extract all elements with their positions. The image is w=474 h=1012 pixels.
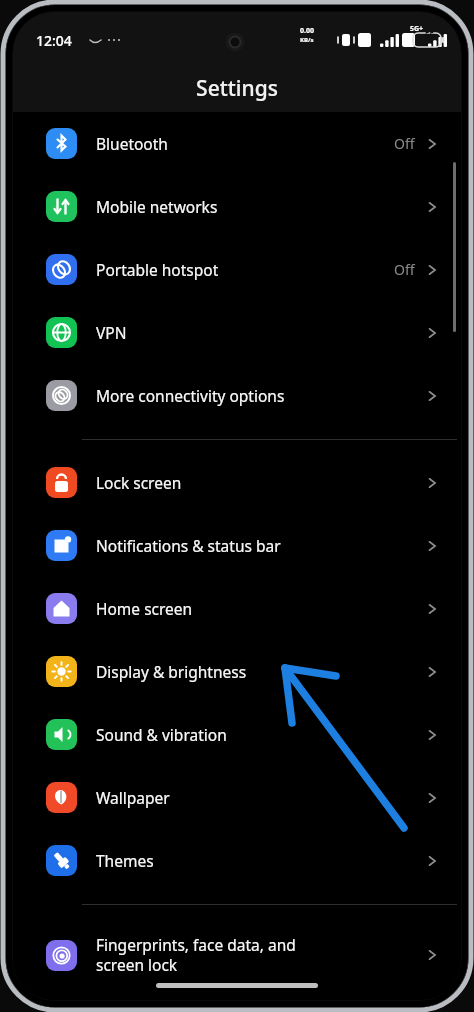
button[interactable]: Notifications & status bar [13, 514, 461, 577]
button[interactable]: Sound & vibration [13, 703, 461, 766]
staticText: Mobile networks [96, 196, 425, 217]
staticText: Off [394, 134, 415, 153]
staticText: 12:04 [36, 31, 72, 50]
button[interactable]: Fingerprints, face data, and screen lock [13, 916, 461, 994]
button[interactable]: Mobile networks [13, 175, 461, 238]
staticText: Home screen [96, 598, 425, 619]
staticText: 55 [425, 29, 435, 40]
button[interactable]: Themes [13, 829, 461, 892]
staticText: Fingerprints, face data, and screen lock [96, 934, 425, 976]
staticText: Display & brightness [96, 661, 425, 682]
staticText: Sound & vibration [96, 724, 425, 745]
staticText: Portable hotspot [96, 259, 394, 280]
staticText: VPN [96, 322, 425, 343]
staticText: Bluetooth [96, 133, 394, 154]
staticText: Lock screen [96, 472, 425, 493]
staticText: Wallpaper [96, 787, 425, 808]
button[interactable]: More connectivity options [13, 364, 461, 427]
staticText: KB/s [300, 36, 314, 44]
button[interactable]: Bluetooth [13, 112, 461, 175]
button[interactable]: Wallpaper [13, 766, 461, 829]
staticText: Themes [96, 850, 425, 871]
staticText: Notifications & status bar [96, 535, 425, 556]
button[interactable]: Portable hotspot [13, 238, 461, 301]
staticText: Settings [13, 74, 461, 103]
button[interactable]: VPN [13, 301, 461, 364]
staticText: Off [394, 260, 415, 279]
button[interactable]: Lock screen [13, 451, 461, 514]
staticText: 5G+ [410, 24, 424, 34]
staticText: 0.00 [300, 26, 314, 36]
button[interactable]: Home screen [13, 577, 461, 640]
button[interactable]: Display & brightness [13, 640, 461, 703]
staticText: More connectivity options [96, 385, 425, 406]
